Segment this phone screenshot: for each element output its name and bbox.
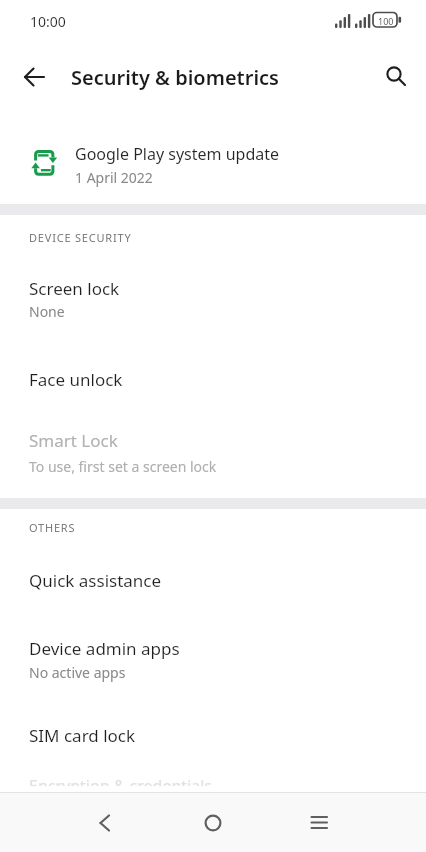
button[interactable]: Google Play system update	[0, 112, 426, 204]
staticText: 100	[378, 15, 394, 27]
staticText: Screen lock	[29, 277, 120, 300]
staticText: Encryption & credentials	[29, 775, 212, 797]
button[interactable]: Device admin apps	[0, 614, 426, 694]
button[interactable]: Smart Lock	[0, 412, 426, 490]
staticText: Google Play system update	[75, 143, 280, 165]
staticText: DEVICE SECURITY	[29, 230, 132, 245]
staticText: SIM card lock	[29, 724, 136, 747]
staticText: Quick assistance	[29, 569, 162, 592]
button[interactable]: SIM card lock	[0, 702, 426, 762]
button[interactable]	[194, 804, 232, 842]
staticText: 10:00	[30, 12, 66, 31]
staticText: Smart Lock	[29, 429, 118, 452]
staticText: No active apps	[29, 663, 126, 682]
button[interactable]	[300, 804, 338, 842]
staticText: To use, first set a screen lock	[29, 457, 217, 476]
button[interactable]: Screen lock	[0, 258, 426, 334]
button[interactable]: Face unlock	[0, 346, 426, 402]
button[interactable]	[380, 60, 414, 92]
staticText: 1 April 2022	[75, 168, 153, 187]
staticText: OTHERS	[29, 520, 76, 535]
button[interactable]	[86, 804, 124, 842]
button[interactable]: Quick assistance	[0, 548, 426, 606]
staticText: Face unlock	[29, 368, 123, 391]
staticText: Security & biometrics	[71, 64, 279, 91]
staticText: None	[29, 302, 65, 321]
staticText: Device admin apps	[29, 637, 180, 660]
button[interactable]	[18, 64, 54, 92]
